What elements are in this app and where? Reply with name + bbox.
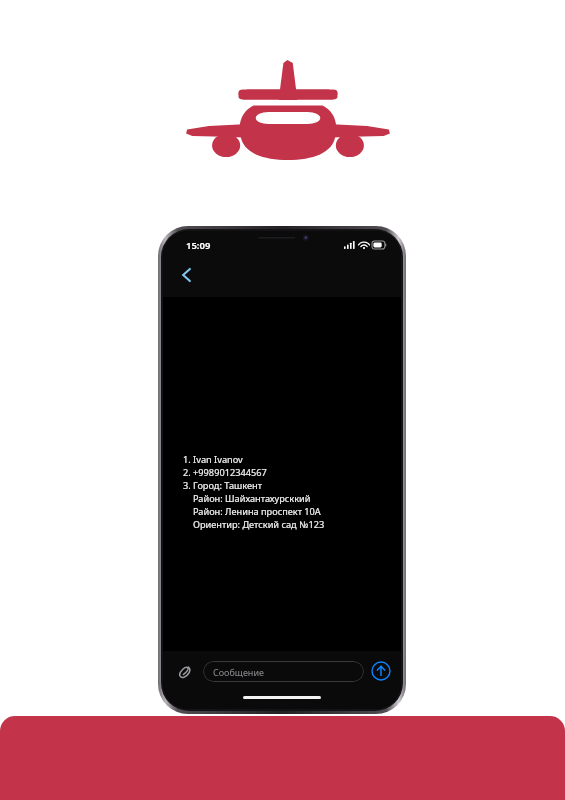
staticText: 2. +9989012344567: [183, 466, 267, 479]
button[interactable]: Send: [371, 661, 391, 681]
button[interactable]: Back: [171, 259, 203, 291]
staticText: 3. Город: Ташкент: [183, 479, 262, 492]
button[interactable]: Сообщение: [203, 661, 364, 682]
staticText: 1. Ivan Ivanov: [183, 453, 243, 466]
staticText: Район: Шайхантахурсккий: [193, 492, 311, 505]
other: Airplane logo: [184, 60, 392, 160]
button[interactable]: Attach file: [173, 659, 197, 683]
staticText: Район: Ленина проспект 10А: [193, 505, 321, 518]
staticText: Сообщение: [213, 666, 264, 678]
staticText: 15:09: [186, 239, 211, 252]
staticText: Ориентир: Детский сад №123: [193, 518, 325, 531]
